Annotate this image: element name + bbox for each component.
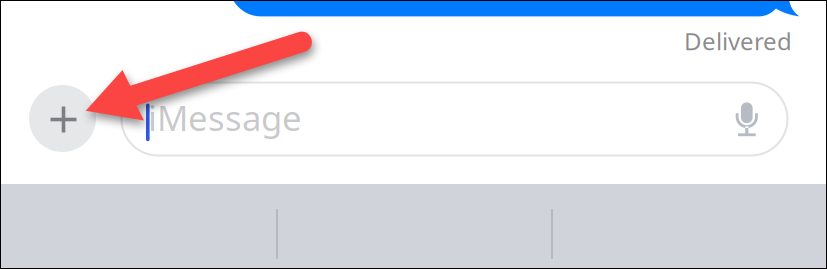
staticText: Delivered xyxy=(684,25,792,57)
button[interactable]: Record audio message xyxy=(0,0,827,269)
staticText: iMessage xyxy=(148,94,302,140)
button[interactable]: Add attachment xyxy=(29,85,96,152)
button[interactable]: Message field xyxy=(121,82,787,155)
